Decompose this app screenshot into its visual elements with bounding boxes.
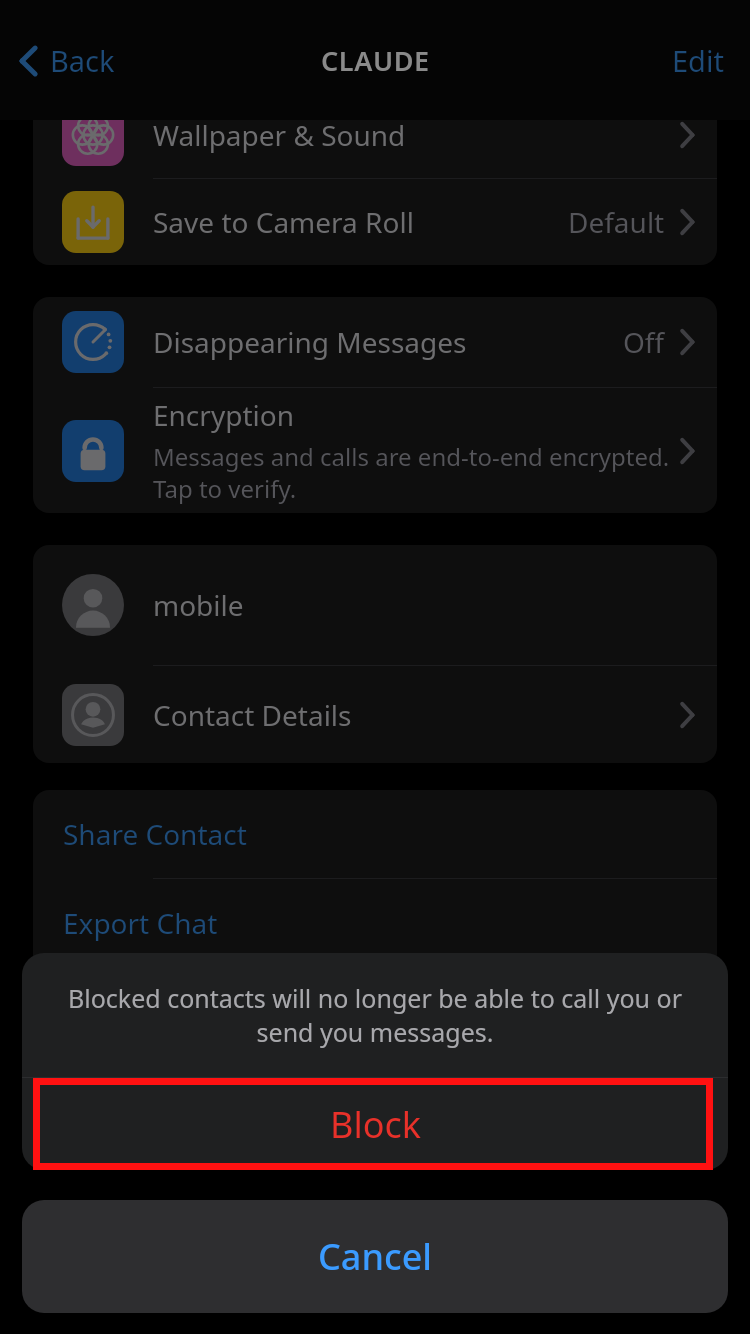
button[interactable]: Encryption: [33, 388, 717, 513]
button[interactable]: Save to Camera Roll: [33, 179, 717, 265]
staticText: Contact Details: [153, 696, 352, 734]
staticText: Messages and calls are end-to-end encryp…: [153, 440, 670, 505]
button[interactable]: Block: [22, 1078, 728, 1170]
staticText: Export Chat: [63, 904, 218, 942]
staticText: Back: [50, 41, 115, 80]
staticText: Edit: [672, 41, 724, 80]
staticText: CLAUDE: [321, 42, 430, 79]
staticText: mobile: [153, 586, 244, 624]
staticText: Blocked contacts will no longer be able …: [62, 981, 688, 1049]
button[interactable]: Back: [14, 35, 119, 86]
button[interactable]: Export Chat: [33, 879, 717, 967]
staticText: Encryption: [153, 396, 294, 434]
staticText: Disappearing Messages: [153, 323, 467, 361]
staticText: Off: [623, 323, 665, 361]
button[interactable]: Disappearing Messages: [33, 297, 717, 387]
button[interactable]: mobile: [33, 545, 717, 665]
button[interactable]: Wallpaper & Sound: [33, 92, 717, 178]
button[interactable]: Contact Details: [33, 666, 717, 763]
staticText: Save to Camera Roll: [153, 203, 414, 241]
button[interactable]: Share Contact: [33, 790, 717, 878]
button[interactable]: Edit: [666, 35, 730, 86]
staticText: Share Contact: [63, 815, 247, 853]
staticText: Default: [568, 203, 665, 241]
staticText: Wallpaper & Sound: [153, 116, 406, 154]
staticText: Block: [330, 1100, 421, 1149]
button[interactable]: Cancel: [22, 1200, 728, 1313]
staticText: Cancel: [318, 1232, 433, 1281]
